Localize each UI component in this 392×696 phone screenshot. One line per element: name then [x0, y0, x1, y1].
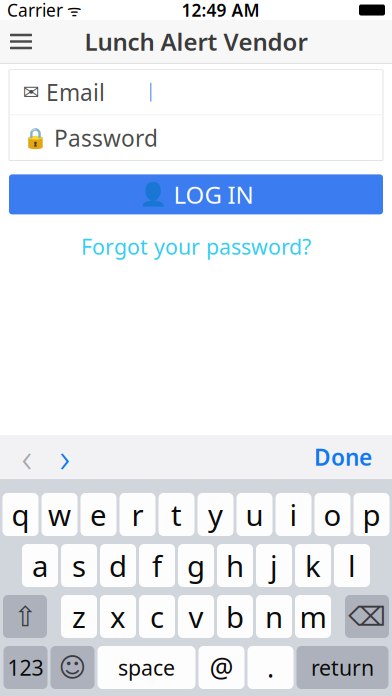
button[interactable]: o: [314, 493, 350, 536]
button[interactable]: Next field: [46, 435, 84, 479]
staticText: ✉: [23, 81, 40, 104]
button[interactable]: g: [178, 544, 214, 587]
button[interactable]: c: [139, 595, 175, 638]
button[interactable]: .: [247, 646, 293, 689]
staticText: h: [226, 546, 244, 585]
button[interactable]: Done: [302, 435, 384, 479]
staticText: ›: [59, 430, 70, 483]
button[interactable]: u: [236, 493, 272, 536]
button[interactable]: m: [295, 595, 331, 638]
button[interactable]: Forgot your password?: [71, 226, 321, 267]
staticText: i: [289, 495, 297, 534]
button[interactable]: j: [256, 544, 292, 587]
staticText: p: [362, 495, 380, 534]
staticText: c: [150, 597, 164, 636]
staticText: Email: [40, 77, 105, 107]
button[interactable]: t: [158, 493, 194, 536]
staticText: Forgot your password?: [81, 232, 311, 261]
button[interactable]: Previous field: [8, 435, 46, 479]
button[interactable]: 🔒: [9, 115, 383, 160]
button[interactable]: l: [334, 544, 370, 587]
staticText: a: [32, 546, 48, 585]
staticText: y: [208, 495, 223, 534]
staticText: v: [188, 597, 203, 636]
button[interactable]: s: [61, 544, 97, 587]
staticText: o: [323, 495, 341, 534]
button[interactable]: k: [295, 544, 331, 587]
staticText: k: [305, 546, 321, 585]
button[interactable]: ✉: [9, 70, 383, 115]
button[interactable]: v: [178, 595, 214, 638]
staticText: Carrier: [7, 0, 63, 21]
button[interactable]: Delete: [345, 595, 389, 638]
button[interactable]: 123: [3, 646, 47, 689]
staticText: ᯤ: [67, 0, 82, 21]
staticText: Password: [48, 123, 158, 153]
staticText: Lunch Alert Vendor: [84, 26, 307, 57]
button[interactable]: x: [100, 595, 136, 638]
staticText: z: [72, 597, 86, 636]
staticText: q: [11, 495, 29, 534]
staticText: .: [267, 650, 274, 685]
staticText: e: [90, 495, 107, 534]
staticText: space: [118, 653, 175, 682]
staticText: f: [152, 546, 162, 585]
staticText: l: [348, 546, 356, 585]
staticText: 👤: [138, 181, 166, 207]
button[interactable]: i: [275, 493, 311, 536]
button[interactable]: b: [217, 595, 253, 638]
button[interactable]: f: [139, 544, 175, 587]
staticText: ⌫: [348, 601, 386, 632]
button[interactable]: return: [296, 646, 388, 689]
button[interactable]: Emoji: [50, 646, 94, 689]
staticText: s: [72, 546, 86, 585]
button[interactable]: Shift: [3, 595, 47, 638]
button[interactable]: q: [2, 493, 38, 536]
staticText: LOG IN: [173, 178, 253, 210]
staticText: j: [270, 546, 278, 585]
button[interactable]: r: [119, 493, 155, 536]
button[interactable]: Menu: [0, 20, 42, 63]
staticText: n: [265, 597, 283, 636]
button[interactable]: p: [353, 493, 389, 536]
button[interactable]: @: [198, 646, 244, 689]
button[interactable]: d: [100, 544, 136, 587]
staticText: m: [299, 597, 326, 636]
button[interactable]: w: [41, 493, 77, 536]
staticText: ⇧: [13, 601, 36, 632]
staticText: 123: [7, 653, 43, 682]
staticText: d: [109, 546, 127, 585]
staticText: b: [226, 597, 244, 636]
staticText: Done: [314, 442, 372, 472]
button[interactable]: e: [80, 493, 116, 536]
button[interactable]: a: [22, 544, 58, 587]
staticText: ‹: [21, 430, 32, 483]
staticText: g: [187, 546, 205, 585]
staticText: x: [110, 597, 126, 636]
button[interactable]: n: [256, 595, 292, 638]
button[interactable]: y: [197, 493, 233, 536]
staticText: t: [171, 495, 182, 534]
staticText: @: [209, 650, 233, 685]
staticText: ☺: [58, 652, 86, 683]
button[interactable]: space: [97, 646, 195, 689]
staticText: w: [48, 495, 71, 534]
button[interactable]: z: [61, 595, 97, 638]
staticText: r: [131, 495, 143, 534]
staticText: u: [245, 495, 263, 534]
button[interactable]: h: [217, 544, 253, 587]
staticText: 12:49 AM: [181, 0, 259, 21]
staticText: 🔒: [23, 126, 48, 149]
staticText: return: [311, 653, 374, 682]
button[interactable]: 👤: [9, 174, 383, 214]
